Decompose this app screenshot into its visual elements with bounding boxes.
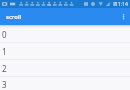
staticText: 11:14	[115, 1, 128, 8]
button[interactable]: 3	[0, 76, 130, 90]
button[interactable]: 0	[0, 25, 130, 42]
staticText: 2	[2, 63, 7, 74]
staticText: 0	[2, 29, 7, 40]
staticText: 1	[2, 46, 7, 57]
staticText: scroll	[6, 13, 22, 21]
button[interactable]: More options	[117, 10, 130, 23]
button[interactable]: 1	[0, 42, 130, 59]
button[interactable]: 2	[0, 59, 130, 76]
staticText: 3	[2, 79, 7, 90]
